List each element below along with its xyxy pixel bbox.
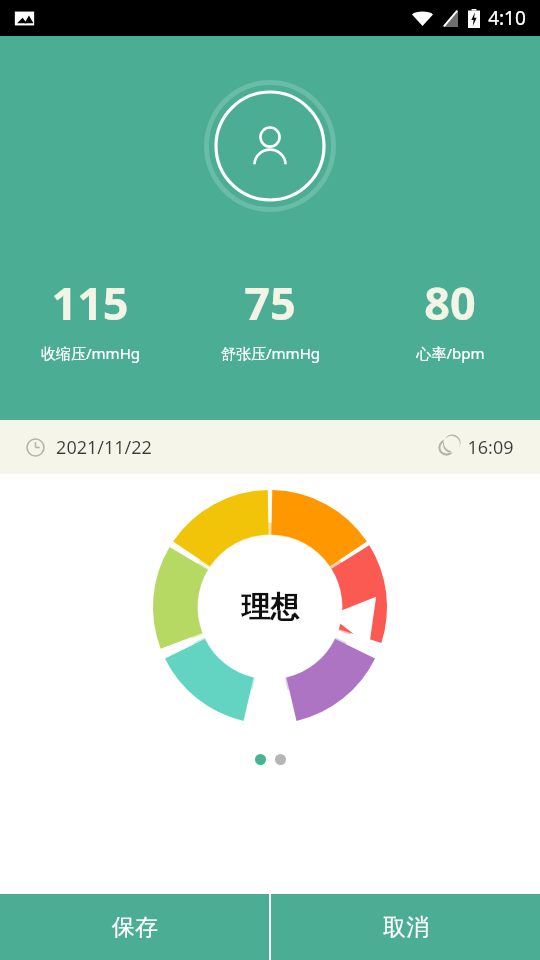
staticText: 115 — [51, 272, 129, 333]
staticText: 4:10 — [488, 5, 526, 31]
staticText: 75 — [244, 272, 296, 333]
staticText: 保存 — [112, 913, 158, 942]
button[interactable]: Page 1 — [255, 754, 266, 765]
staticText: 理想 — [241, 589, 299, 626]
staticText: 80 — [424, 272, 476, 333]
button[interactable]: 保存 — [0, 894, 269, 960]
button[interactable]: 2021/11/22 — [26, 435, 152, 460]
staticText: 16:09 — [467, 435, 514, 460]
button[interactable]: Page 2 — [275, 754, 286, 765]
staticText: 舒张压/mmHg — [221, 343, 320, 363]
button[interactable]: 16:09 — [437, 435, 514, 460]
staticText: 取消 — [383, 913, 429, 942]
staticText: 2021/11/22 — [56, 435, 152, 460]
button[interactable]: Profile — [204, 80, 336, 212]
staticText: 收缩压/mmHg — [41, 343, 140, 363]
staticText: 心率/bpm — [416, 343, 485, 363]
button[interactable]: 取消 — [271, 894, 540, 960]
